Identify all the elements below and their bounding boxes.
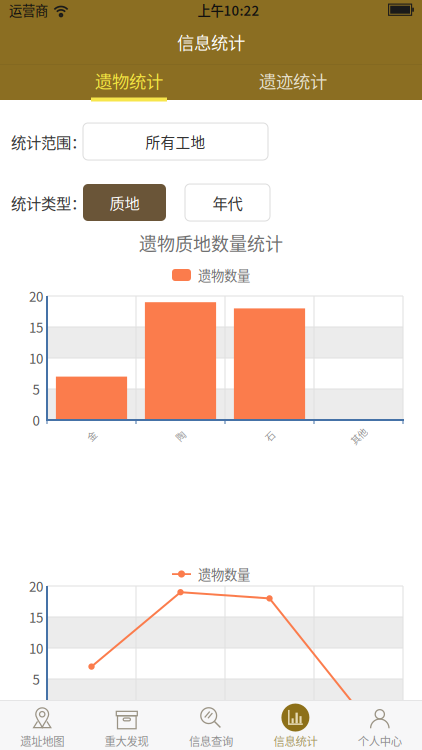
staticText: 5	[32, 379, 39, 399]
staticText: 遗址地图	[20, 732, 64, 749]
button[interactable]: 所有工地	[83, 123, 268, 160]
staticText: 10	[29, 638, 43, 658]
staticText: 5	[32, 669, 39, 689]
staticText: 信息统计	[273, 732, 317, 749]
button[interactable]: 年代	[185, 184, 270, 221]
staticText: 信息查询	[189, 732, 233, 749]
staticText: 0	[32, 410, 39, 430]
staticText: 遗物质地数量统计	[139, 230, 283, 256]
staticText: 质地	[109, 191, 139, 214]
staticText: 15	[29, 317, 43, 337]
button[interactable]: 质地	[83, 184, 166, 221]
staticText: 石	[265, 429, 274, 443]
button[interactable]: 重大发现	[84, 700, 169, 750]
staticText: 遗物统计	[95, 68, 163, 93]
button[interactable]: 遗物统计	[79, 63, 179, 98]
staticText: 15	[29, 607, 43, 627]
staticText: 遗迹统计	[259, 68, 327, 93]
staticText: 陶	[176, 429, 185, 443]
staticText: 10	[29, 348, 43, 368]
staticText: 统计范围：	[11, 130, 86, 153]
staticText: 20	[29, 286, 43, 306]
button[interactable]: 信息统计	[253, 700, 338, 750]
button[interactable]: 信息查询	[169, 700, 253, 750]
staticText: 金	[87, 429, 96, 443]
staticText: 20	[29, 576, 43, 596]
staticText: 信息统计	[177, 29, 245, 55]
staticText: 遗物数量	[198, 564, 250, 584]
button[interactable]: 遗址地图	[0, 700, 84, 750]
staticText: 其他	[349, 429, 367, 443]
staticText: 年代	[212, 191, 242, 214]
staticText: 所有工地	[145, 131, 205, 152]
button[interactable]: 遗迹统计	[243, 63, 343, 98]
staticText: 上午10:22	[197, 0, 259, 20]
staticText: 统计类型：	[11, 191, 86, 214]
staticText: 0	[32, 700, 39, 720]
staticText: 遗物数量	[198, 265, 250, 285]
staticText: 运营商	[9, 0, 48, 20]
staticText: 重大发现	[105, 732, 149, 749]
staticText: 个人中心	[358, 732, 402, 749]
button[interactable]: 个人中心	[338, 700, 422, 750]
